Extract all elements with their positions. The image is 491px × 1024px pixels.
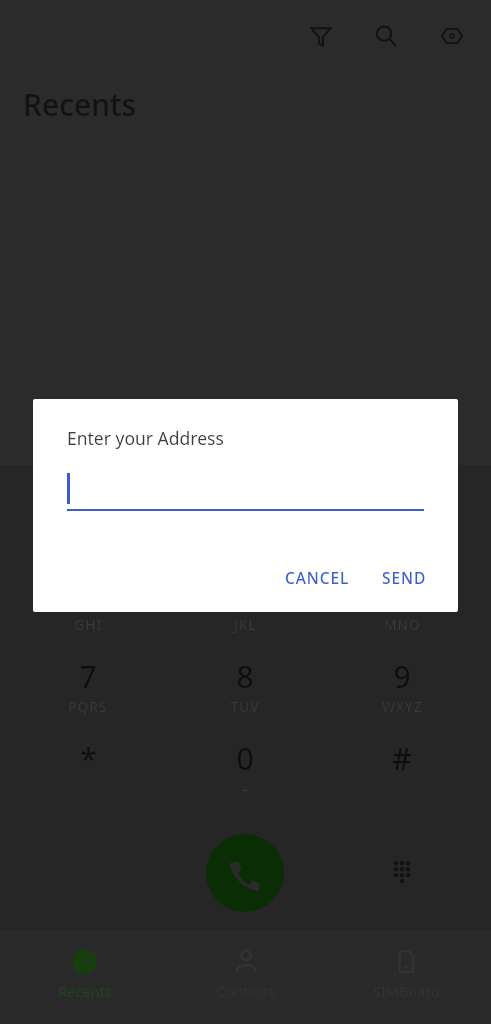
staticText: 5 [236, 574, 254, 615]
staticText: Enter your Address [67, 426, 224, 450]
staticText: MNO [384, 616, 421, 634]
button[interactable]: SEND [377, 563, 432, 592]
staticText: TUV [230, 698, 260, 716]
staticText: * [80, 738, 97, 779]
button[interactable]: 3 [324, 478, 480, 560]
button[interactable]: Call [206, 834, 284, 912]
button[interactable]: 6 [324, 560, 480, 642]
staticText: 0 [236, 738, 254, 779]
staticText: PQRS [68, 698, 108, 716]
staticText: GHI [74, 616, 103, 634]
staticText: WXYZ [382, 698, 423, 716]
staticText: + [241, 781, 250, 799]
staticText: 7 [79, 656, 97, 697]
button[interactable]: Dialpad [374, 843, 430, 899]
staticText: 8 [236, 656, 254, 697]
button[interactable]: Options [433, 17, 471, 55]
staticText: 1 [79, 492, 97, 533]
button[interactable] [67, 471, 424, 519]
button[interactable]: 1 [10, 478, 166, 560]
staticText: 9 [393, 656, 411, 697]
button[interactable]: CANCEL [280, 563, 355, 592]
staticText: Recents [23, 84, 137, 125]
staticText: 3 [393, 492, 411, 533]
button[interactable]: Search [367, 17, 405, 55]
staticText: Recents [58, 981, 112, 1001]
staticText: 2 [236, 492, 254, 533]
staticText: # [392, 738, 412, 779]
staticText: 4 [79, 574, 97, 615]
button[interactable]: 5 [167, 560, 323, 642]
staticText: SEND [382, 567, 427, 588]
staticText: 6 [393, 574, 411, 615]
button[interactable]: 4 [10, 560, 166, 642]
button[interactable]: 2 [167, 478, 323, 560]
button[interactable]: Filter [302, 17, 340, 55]
button[interactable]: Recents [10, 930, 160, 1024]
staticText: JKL [234, 616, 257, 634]
staticText: CANCEL [285, 567, 350, 588]
